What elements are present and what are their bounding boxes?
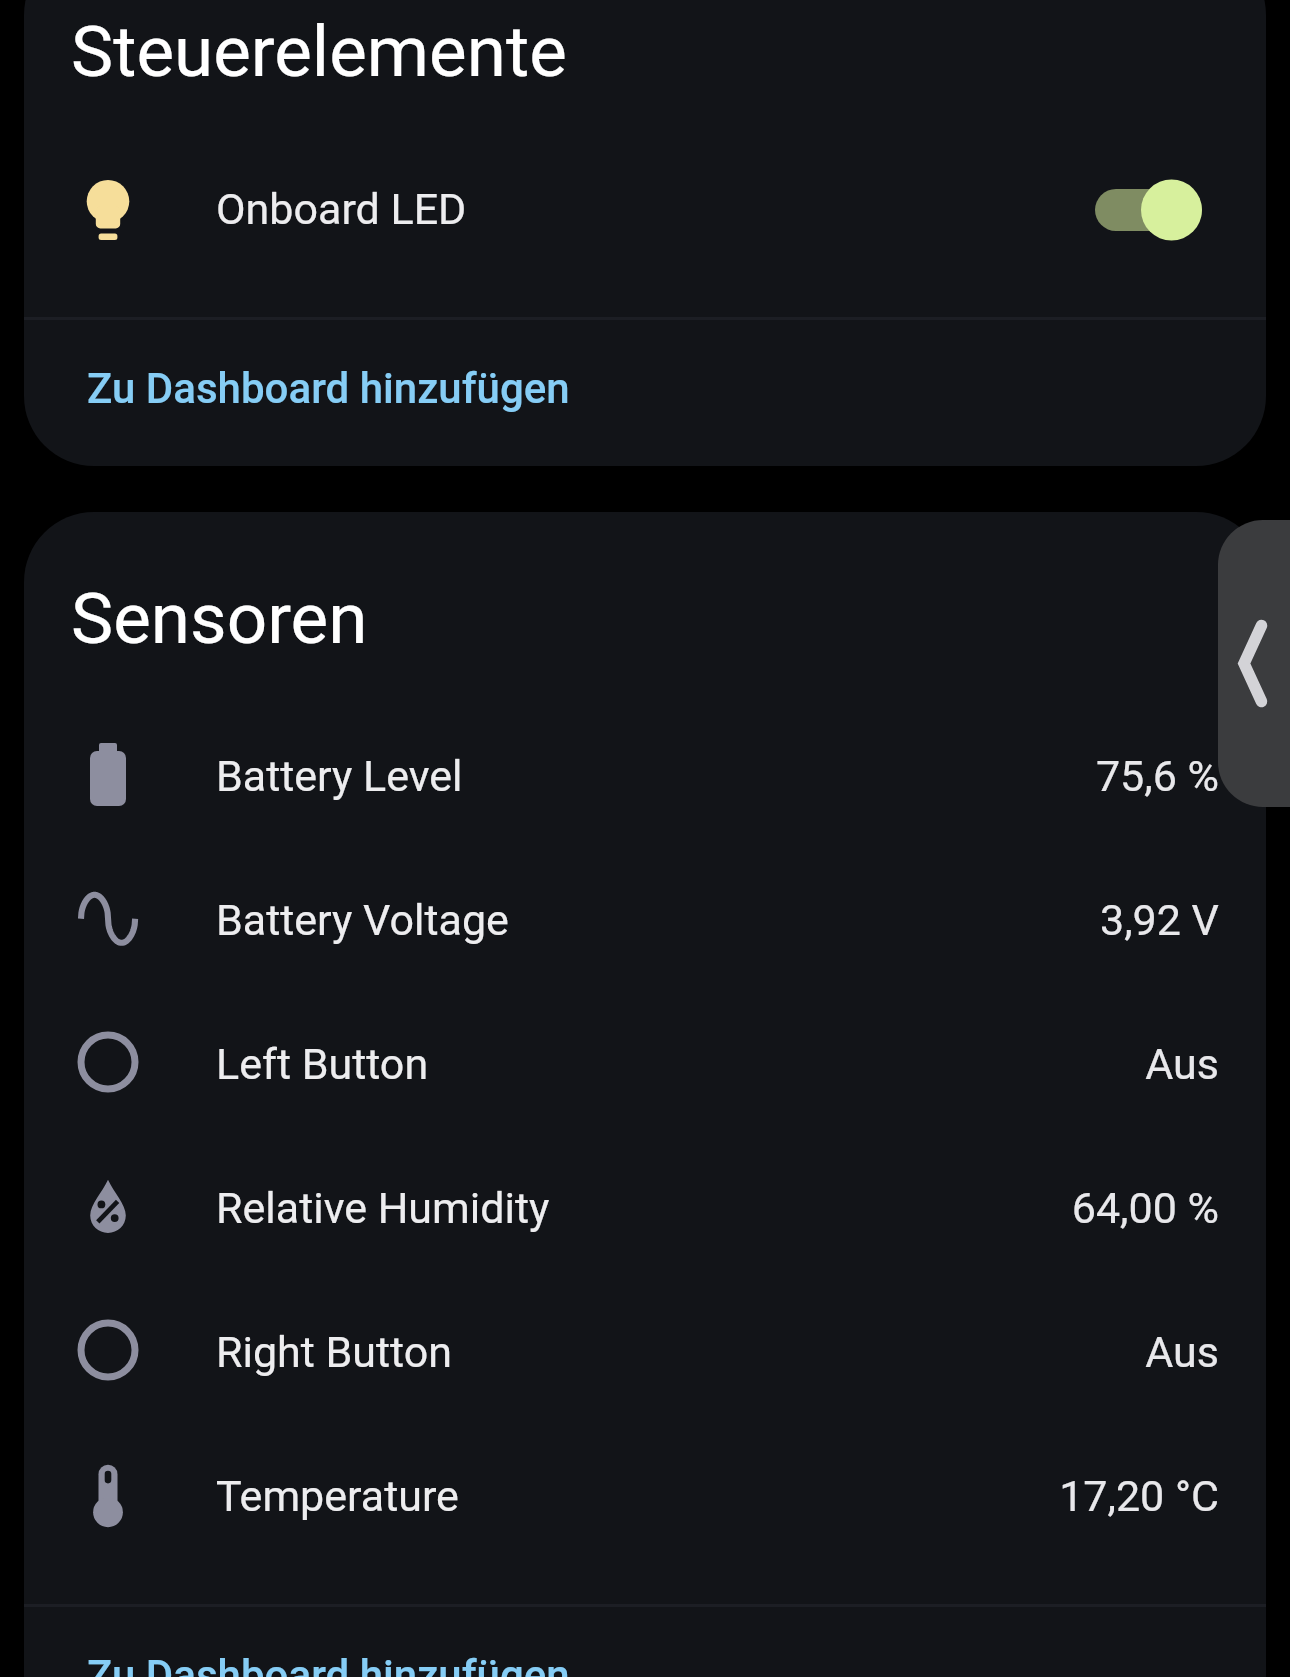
- staticText: Sensoren: [71, 577, 368, 660]
- button[interactable]: Battery Voltage: [24, 846, 1266, 990]
- button[interactable]: Zu Dashboard hinzufügen: [24, 1607, 1266, 1677]
- staticText: Relative Humidity: [216, 1183, 550, 1233]
- staticText: 75,6 %: [624, 751, 1219, 801]
- staticText: Aus: [624, 1039, 1219, 1089]
- button[interactable]: Left Button: [24, 990, 1266, 1134]
- staticText: Temperature: [216, 1471, 459, 1521]
- staticText: Left Button: [216, 1039, 429, 1089]
- button[interactable]: Zu Dashboard hinzufügen: [24, 320, 1266, 466]
- staticText: Zu Dashboard hinzufügen: [87, 1651, 570, 1677]
- staticText: Battery Voltage: [216, 895, 509, 945]
- staticText: Aus: [624, 1327, 1219, 1377]
- button[interactable]: Battery Level: [24, 702, 1266, 846]
- button[interactable]: Back: [1218, 520, 1290, 807]
- staticText: Right Button: [216, 1327, 452, 1377]
- staticText: Steuerelemente: [71, 10, 567, 93]
- button[interactable]: Onboard LED toggle: [1095, 175, 1206, 245]
- staticText: 3,92 V: [624, 895, 1219, 945]
- button[interactable]: Temperature: [24, 1422, 1266, 1566]
- button[interactable]: Relative Humidity: [24, 1134, 1266, 1278]
- button[interactable]: Right Button: [24, 1278, 1266, 1422]
- staticText: 17,20 °C: [624, 1471, 1219, 1521]
- staticText: 64,00 %: [624, 1183, 1219, 1233]
- button[interactable]: Onboard LED: [24, 135, 1266, 279]
- staticText: Zu Dashboard hinzufügen: [87, 364, 570, 413]
- staticText: Battery Level: [216, 751, 463, 801]
- staticText: Onboard LED: [216, 184, 467, 234]
